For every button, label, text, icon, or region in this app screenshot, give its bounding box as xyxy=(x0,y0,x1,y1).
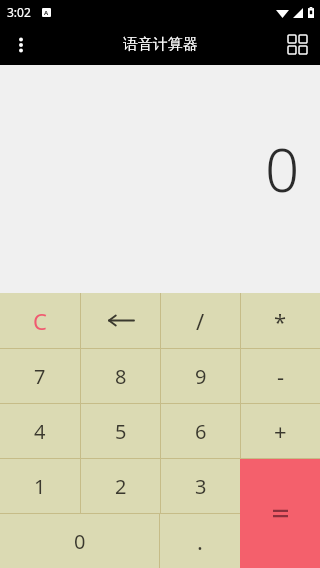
staticText: 1 xyxy=(34,473,46,500)
button[interactable]: 4 xyxy=(0,404,80,458)
staticText: - xyxy=(277,361,285,391)
staticText: + xyxy=(274,416,287,446)
staticText: . xyxy=(197,526,203,556)
staticText: 5 xyxy=(115,418,127,445)
button[interactable]: C xyxy=(0,293,80,348)
button[interactable]: + xyxy=(241,404,320,458)
button[interactable]: 0 xyxy=(0,514,159,568)
button[interactable]: 9 xyxy=(161,349,240,403)
staticText: A xyxy=(44,9,49,17)
button[interactable]: More options xyxy=(0,24,42,65)
button[interactable]: 2 xyxy=(81,459,160,513)
button[interactable]: Equals xyxy=(240,459,320,568)
button[interactable]: Grid layout xyxy=(274,24,320,65)
button[interactable]: 5 xyxy=(81,404,160,458)
staticText: 8 xyxy=(115,363,127,390)
staticText: 6 xyxy=(195,418,207,445)
staticText: 0 xyxy=(265,128,300,210)
button[interactable]: 3 xyxy=(161,459,240,513)
staticText: 3 xyxy=(195,473,207,500)
button[interactable]: 8 xyxy=(81,349,160,403)
staticText: 7 xyxy=(34,363,46,390)
button[interactable]: 6 xyxy=(161,404,240,458)
staticText: * xyxy=(274,306,287,336)
button[interactable]: - xyxy=(241,349,320,403)
staticText: 0 xyxy=(74,528,86,555)
button[interactable]: * xyxy=(241,293,320,348)
button[interactable]: 1 xyxy=(0,459,80,513)
button[interactable]: 7 xyxy=(0,349,80,403)
button[interactable]: . xyxy=(160,514,240,568)
staticText: 4 xyxy=(34,418,46,445)
staticText: 语音计算器 xyxy=(123,35,198,54)
staticText: 9 xyxy=(195,363,207,390)
staticText: / xyxy=(196,306,205,336)
staticText: 3:02 xyxy=(7,4,31,20)
button[interactable]: Backspace xyxy=(81,293,160,348)
button[interactable]: / xyxy=(161,293,240,348)
staticText: 2 xyxy=(115,473,127,500)
staticText: C xyxy=(33,306,47,336)
